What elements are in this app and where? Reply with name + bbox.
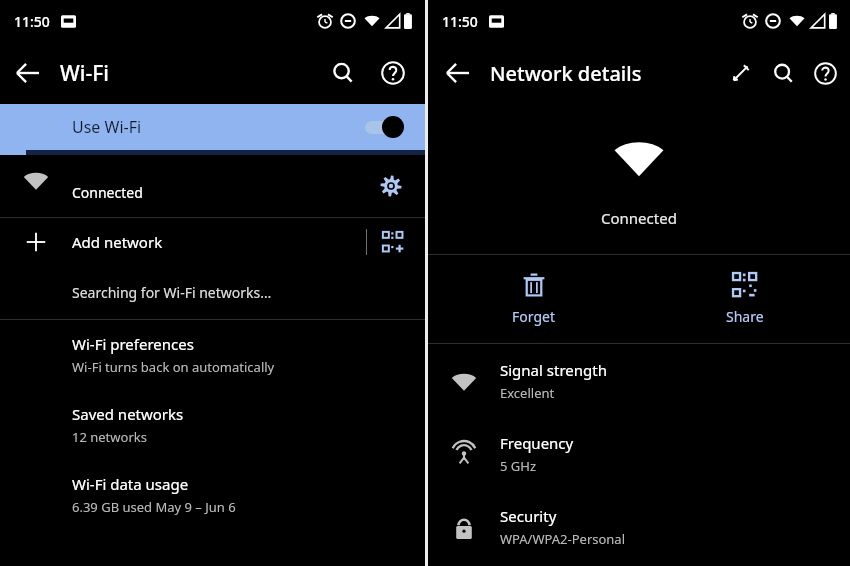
button[interactable]: Forget [428, 255, 639, 343]
button[interactable]: Back [6, 51, 50, 95]
button[interactable]: Wi-Fi preferences [0, 320, 425, 390]
staticText: Frequency [500, 433, 574, 453]
button[interactable]: Signal strength [428, 344, 850, 417]
staticText: Signal strength [500, 360, 607, 380]
button[interactable]: Help [804, 52, 846, 94]
button[interactable]: Add network [0, 218, 425, 266]
staticText: Saved networks [72, 404, 184, 424]
staticText: 11:50 [442, 12, 478, 31]
staticText: Security [500, 506, 557, 526]
staticText: Connected [72, 183, 143, 202]
button[interactable]: Back [436, 51, 480, 95]
button[interactable]: Network settings [371, 166, 411, 206]
staticText: Wi-Fi preferences [72, 334, 194, 354]
button[interactable]: Use Wi-Fi [0, 104, 425, 150]
staticText: Connected [601, 208, 677, 228]
staticText: 11:50 [14, 12, 50, 31]
staticText: Share [726, 307, 764, 326]
button[interactable]: Edit [720, 52, 762, 94]
button[interactable]: Wi-Fi data usage [0, 460, 425, 530]
staticText: Wi-Fi turns back on automatically [72, 358, 275, 376]
button[interactable]: Search [762, 52, 804, 94]
staticText: Excellent [500, 384, 555, 402]
staticText: WPA/WPA2-Personal [500, 530, 626, 548]
staticText: 5 GHz [500, 457, 537, 475]
button[interactable]: Connected [0, 155, 425, 217]
staticText: 12 networks [72, 428, 147, 446]
button[interactable]: Share [639, 255, 850, 343]
staticText: 6.39 GB used May 9 – Jun 6 [72, 498, 236, 516]
button[interactable]: Saved networks [0, 390, 425, 460]
button[interactable]: Add network with QR code [373, 222, 413, 262]
staticText: Wi-Fi [60, 59, 321, 88]
button[interactable]: Frequency [428, 417, 850, 490]
staticText: Network details [490, 60, 720, 87]
staticText: Use Wi-Fi [72, 116, 363, 138]
button[interactable]: Help [371, 51, 415, 95]
staticText: Add network [72, 232, 366, 252]
staticText: Searching for Wi-Fi networks… [72, 283, 272, 302]
button[interactable]: Security [428, 490, 850, 563]
staticText: Forget [512, 307, 555, 326]
button[interactable]: Search [321, 51, 365, 95]
staticText: Wi-Fi data usage [72, 474, 189, 494]
